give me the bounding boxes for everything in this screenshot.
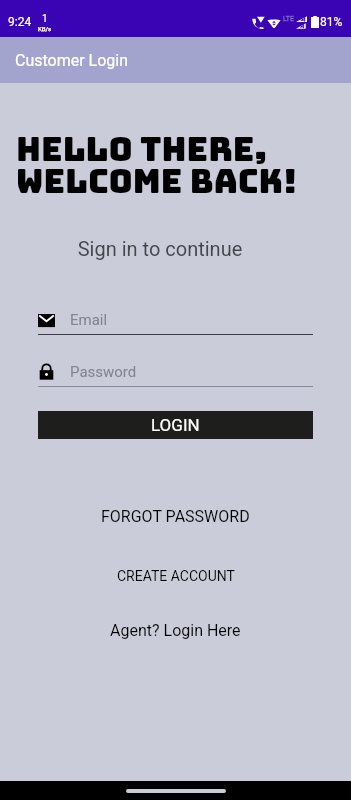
staticText: Password <box>70 363 137 381</box>
staticText: LTE <box>283 15 294 23</box>
staticText: 1 <box>42 13 48 25</box>
button[interactable]: Password <box>38 362 313 387</box>
staticText: Customer Login <box>15 51 129 70</box>
button[interactable]: FORGOT PASSWORD <box>0 505 351 527</box>
staticText: Email <box>70 311 108 329</box>
staticText: Agent? Login Here <box>110 621 241 640</box>
button[interactable]: LOGIN <box>38 411 313 439</box>
staticText: HELLO THERE, WELCOME BACK! <box>16 127 298 203</box>
button[interactable]: Agent? Login Here <box>0 619 351 641</box>
staticText: 81% <box>320 15 343 29</box>
button[interactable]: Email <box>38 310 313 335</box>
staticText: Sign in to continue <box>0 237 320 260</box>
staticText: CREATE ACCOUNT <box>117 568 235 584</box>
staticText: KB/s <box>38 25 52 32</box>
staticText: LOGIN <box>151 415 200 435</box>
button[interactable]: CREATE ACCOUNT <box>0 565 351 587</box>
staticText: FORGOT PASSWORD <box>101 507 250 526</box>
staticText: 9:24 <box>8 15 32 29</box>
